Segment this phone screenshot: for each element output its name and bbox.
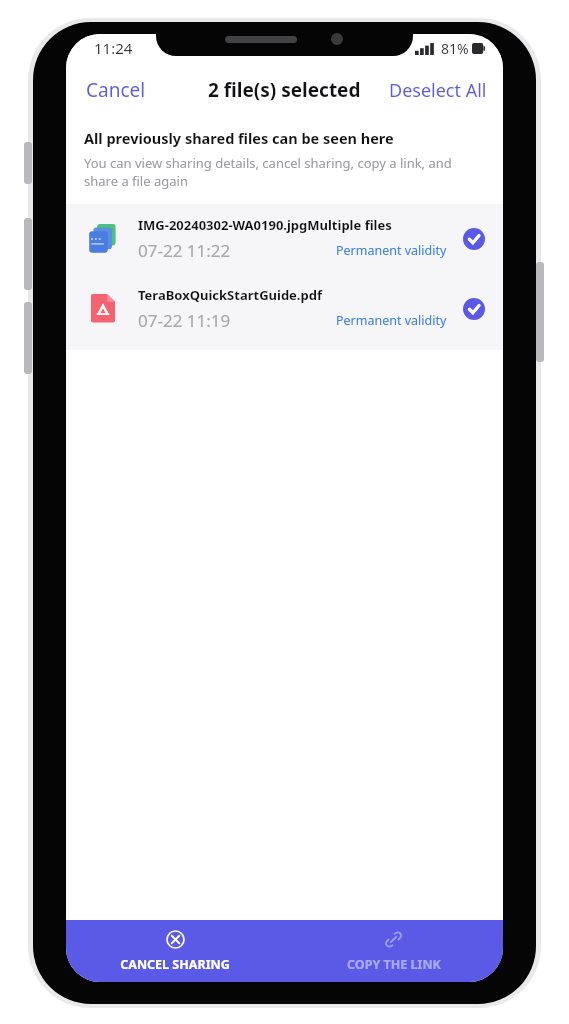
staticText: COPY THE LINK [347,956,441,973]
staticText: 2 file(s) selected [208,77,361,103]
button[interactable]: TeraBoxQuickStartGuide.pdf [66,274,503,344]
button[interactable]: CANCEL SHARING [66,920,284,982]
button[interactable]: Selected [459,294,489,324]
staticText: You can view sharing details, cancel sha… [84,154,483,190]
staticText: 07-22 11:19 [138,309,231,332]
staticText: IMG-20240302-WA0190.jpgMultiple files [138,216,392,234]
button[interactable]: COPY THE LINK [284,920,503,982]
staticText: All previously shared files can be seen … [84,128,394,148]
staticText: TeraBoxQuickStartGuide.pdf [138,286,322,304]
staticText: Permanent validity [336,312,447,329]
staticText: CANCEL SHARING [120,956,230,973]
staticText: Permanent validity [336,242,447,259]
staticText: Cancel [86,77,146,103]
button[interactable]: IMG-20240302-WA0190.jpgMultiple files [66,204,503,274]
button[interactable]: Cancel [66,67,166,113]
button[interactable]: Selected [459,224,489,254]
staticText: 07-22 11:22 [138,239,231,262]
staticText: Deselect All [389,78,487,103]
button[interactable]: Deselect All [373,68,503,113]
staticText: 81% [441,39,469,58]
staticText: 11:24 [94,38,133,58]
